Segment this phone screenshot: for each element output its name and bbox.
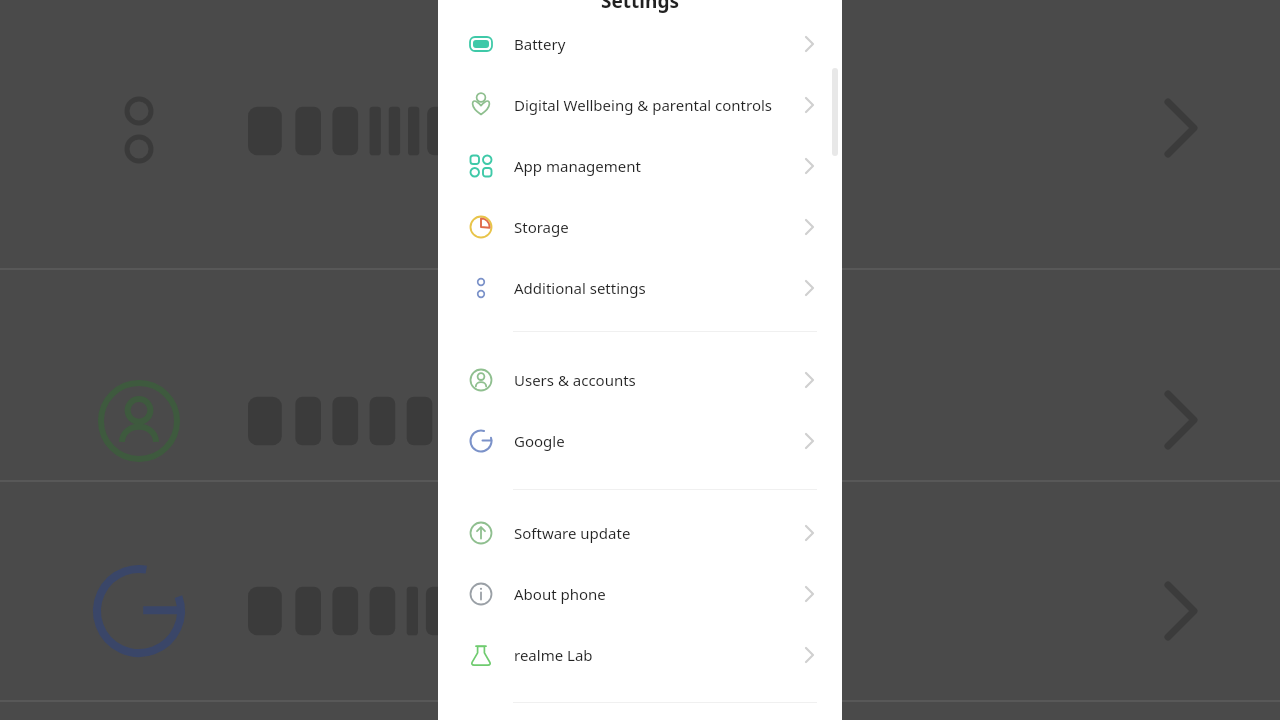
staticText: Battery <box>514 34 566 54</box>
staticText: Digital Wellbeing & parental controls <box>514 95 773 115</box>
staticText: Settings <box>601 0 679 14</box>
button[interactable]: Google <box>438 411 842 471</box>
staticText: Additional settings <box>514 278 646 298</box>
button[interactable]: Software update <box>438 503 842 563</box>
button[interactable]: Storage <box>438 197 842 257</box>
staticText: Google <box>514 431 565 451</box>
staticText: Users & accounts <box>514 370 636 390</box>
staticText: Storage <box>514 217 569 237</box>
button[interactable]: Users & accounts <box>438 350 842 410</box>
staticText: About phone <box>514 584 606 604</box>
button[interactable]: Additional settings <box>438 258 842 318</box>
staticText: Software update <box>514 523 631 543</box>
button[interactable]: About phone <box>438 564 842 624</box>
staticText: realme Lab <box>514 645 593 665</box>
button[interactable]: Digital Wellbeing & parental controls <box>438 75 842 135</box>
button[interactable]: realme Lab <box>438 625 842 685</box>
button[interactable]: Battery <box>438 14 842 74</box>
staticText: App management <box>514 156 641 176</box>
button[interactable]: App management <box>438 136 842 196</box>
